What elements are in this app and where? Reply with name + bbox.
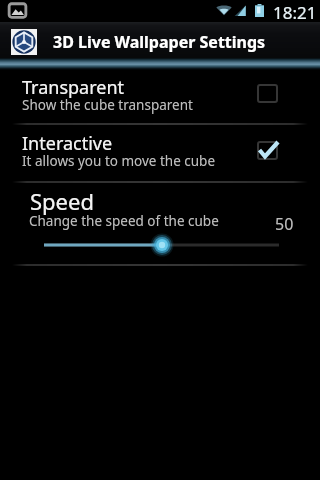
staticText: 18:21 <box>273 1 317 23</box>
button[interactable]: 3D Live Wallpaper Settings <box>0 22 320 62</box>
staticText: Show the cube transparent <box>22 96 193 114</box>
other: Battery <box>255 4 264 17</box>
button[interactable]: Speed slider <box>0 233 320 257</box>
other: Wi-Fi <box>216 4 232 17</box>
staticText: Change the speed of the cube <box>29 212 219 230</box>
staticText: Interactive <box>22 131 113 156</box>
other: Mobile signal <box>234 5 246 17</box>
staticText: Transparent <box>22 75 125 100</box>
button[interactable] <box>0 181 320 264</box>
staticText: It allows you to move the cube <box>22 152 216 170</box>
staticText: 3D Live Wallpaper Settings <box>53 31 266 53</box>
staticText: 50 <box>275 213 294 235</box>
staticText: Speed <box>30 186 94 216</box>
button[interactable] <box>0 66 320 123</box>
button[interactable] <box>0 123 320 181</box>
button[interactable]: Checked checkbox <box>257 141 279 161</box>
button[interactable]: Unchecked checkbox <box>257 84 279 104</box>
other: Screenshot captured <box>8 2 27 19</box>
